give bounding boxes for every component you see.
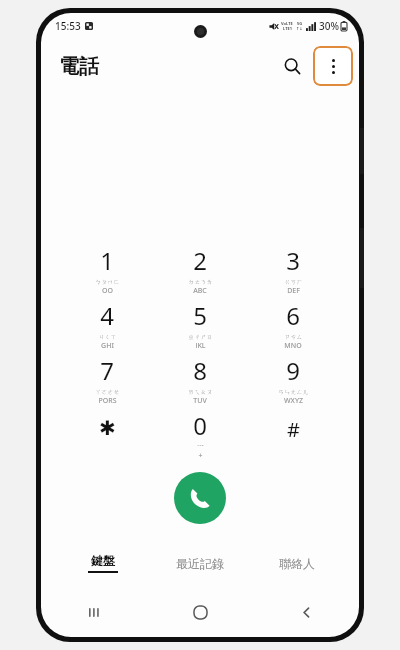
button[interactable]: 2	[158, 243, 242, 293]
staticText: 5	[193, 299, 207, 332]
staticText: PQRS	[98, 396, 117, 403]
staticText: ㄐㄑㄒ	[98, 333, 117, 341]
button[interactable]: 0	[158, 408, 242, 458]
button[interactable]: Back	[253, 595, 359, 629]
staticText: GHI	[101, 341, 114, 348]
staticText: ㄍㄎㄏ	[284, 278, 303, 286]
staticText: ABC	[193, 286, 207, 293]
staticText: 6	[286, 299, 300, 332]
button[interactable]: 8	[158, 353, 242, 403]
staticText: WXYZ	[284, 396, 303, 403]
staticText: LTE1	[283, 26, 292, 31]
staticText: 8	[193, 354, 207, 387]
staticText: ㄚㄛㄜㄝ	[95, 388, 120, 396]
staticText: 0	[193, 409, 207, 442]
staticText: ㄗㄘㄙ	[284, 333, 303, 341]
staticText: 15:53	[55, 19, 81, 33]
button[interactable]: 3	[251, 243, 335, 293]
button[interactable]: 最近記錄	[151, 546, 248, 580]
staticText: DEF	[287, 286, 300, 293]
staticText: 9	[286, 354, 300, 387]
staticText: ㄓㄔㄕㄖ	[188, 333, 213, 341]
staticText: JKL	[195, 341, 206, 348]
staticText: #	[287, 416, 300, 443]
button[interactable]: 聯絡人	[248, 546, 345, 580]
button[interactable]: Call	[174, 472, 226, 524]
staticText: ✱	[99, 416, 116, 439]
button[interactable]: Home	[147, 595, 253, 629]
staticText: 4	[100, 299, 114, 332]
staticText: QO	[102, 286, 113, 293]
staticText: ˉˊˇ	[197, 443, 204, 451]
button[interactable]: 1	[65, 243, 149, 293]
button[interactable]: 9	[251, 353, 335, 403]
button[interactable]: Recent apps	[41, 595, 147, 629]
staticText: ㄢㄣㄤㄥㄦ	[278, 388, 309, 396]
button[interactable]: 鍵盤	[55, 546, 151, 580]
staticText: ㄉㄊㄋㄌ	[188, 278, 213, 286]
staticText: ↑↓	[296, 26, 303, 31]
staticText: 3	[286, 244, 300, 277]
button[interactable]: ✱	[65, 408, 149, 458]
button[interactable]: 6	[251, 298, 335, 348]
staticText: 2	[193, 244, 207, 277]
staticText: VoLTE	[281, 21, 293, 26]
staticText: ㄅㄆㄇㄈ	[95, 278, 120, 286]
button[interactable]: #	[251, 408, 335, 458]
button[interactable]: 5	[158, 298, 242, 348]
staticText: TUV	[193, 396, 207, 403]
staticText: 聯絡人	[279, 556, 315, 571]
staticText: 最近記錄	[176, 556, 224, 571]
staticText: MNO	[284, 341, 302, 348]
staticText: 1	[100, 244, 114, 277]
staticText: 電話	[59, 54, 99, 79]
staticText: ㄞㄟㄠㄡ	[188, 388, 213, 396]
button[interactable]: 4	[65, 298, 149, 348]
staticText: 7	[100, 354, 114, 387]
staticText: 30%	[319, 19, 339, 33]
button[interactable]: 7	[65, 353, 149, 403]
button[interactable]: More options	[313, 46, 353, 86]
staticText: 5G	[297, 21, 303, 26]
button[interactable]: Search	[273, 47, 311, 85]
staticText: 鍵盤	[91, 553, 115, 568]
staticText: +	[198, 451, 203, 458]
